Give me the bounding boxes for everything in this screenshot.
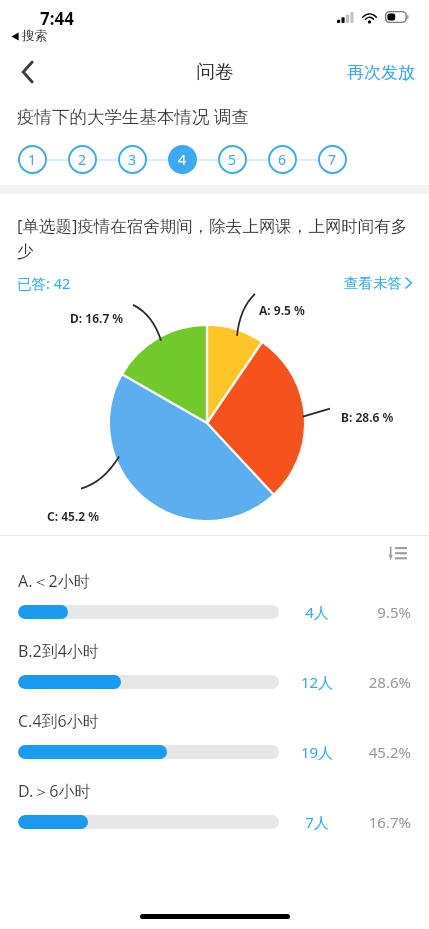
staticText: 5 [228,150,237,169]
staticText: [单选题]疫情在宿舍期间，除去上网课，上网时间有多少 [17,214,412,262]
staticText: 2 [78,150,87,169]
staticText: 再次发放 [347,62,415,83]
staticText: 4 [178,150,187,169]
staticText: 19人 [293,742,341,762]
button[interactable]: C.4到6小时 [0,710,429,780]
button[interactable]: B.2到4小时 [0,640,429,710]
button[interactable]: 7 [318,145,347,174]
staticText: 搜索 [22,28,47,44]
staticText: 4人 [293,602,341,622]
staticText: 9.5% [341,602,411,622]
staticText: 7 [328,150,337,169]
staticText: 16.7% [341,812,411,832]
staticText: 7:44 [40,7,74,30]
staticText: 疫情下的大学生基本情况 调查 [17,104,250,128]
button[interactable]: 3 [118,145,147,174]
staticText: 12人 [293,672,341,692]
button[interactable]: 查看未答 [344,274,412,292]
button[interactable]: D.＞6小时 [0,780,429,850]
staticText: D.＞6小时 [18,780,91,802]
button[interactable]: 6 [268,145,297,174]
staticText: 3 [128,150,137,169]
staticText: B: 28.6 % [341,409,394,425]
staticText: 7人 [293,812,341,832]
staticText: 1 [28,150,37,169]
staticText: 查看未答 [344,274,402,292]
button[interactable]: Sort [382,538,412,568]
button[interactable]: 4 [168,145,197,174]
staticText: D: 16.7 % [70,310,124,326]
staticText: A.＜2小时 [18,570,90,592]
staticText: 45.2% [341,742,411,762]
staticText: C: 45.2 % [47,508,100,524]
button[interactable]: 5 [218,145,247,174]
button[interactable]: 1 [18,145,47,174]
button[interactable]: Back [6,50,50,94]
staticText: 6 [278,150,287,169]
button[interactable]: A.＜2小时 [0,570,429,640]
staticText: A: 9.5 % [259,302,305,318]
button[interactable]: 再次发放 [333,52,429,93]
staticText: 28.6% [341,672,411,692]
staticText: 问卷 [196,60,234,84]
staticText: B.2到4小时 [18,640,99,662]
staticText: C.4到6小时 [18,710,99,732]
button[interactable]: 2 [68,145,97,174]
staticText: 已答: 42 [17,273,71,293]
